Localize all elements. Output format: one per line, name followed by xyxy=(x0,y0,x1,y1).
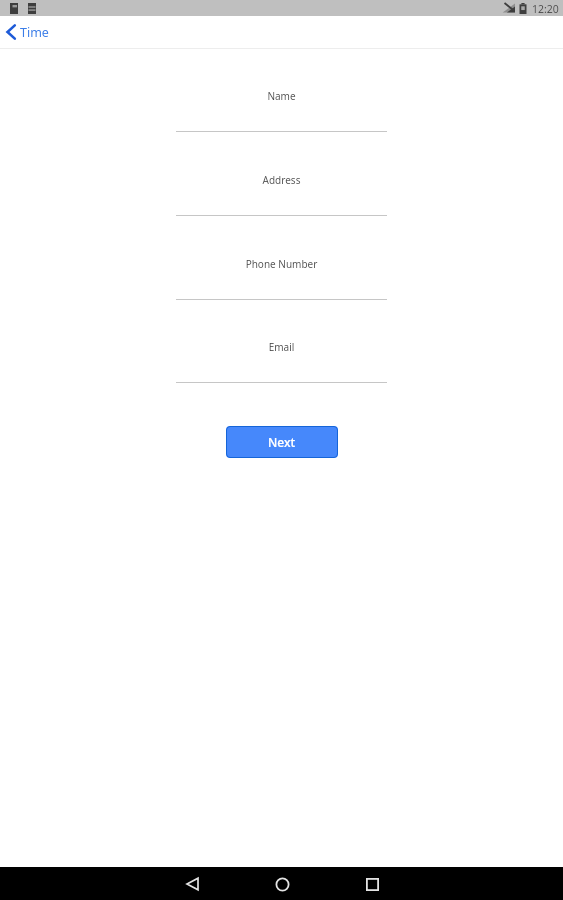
staticText: Email xyxy=(176,340,387,354)
staticText: Address xyxy=(176,173,387,187)
staticText: Time xyxy=(20,24,49,41)
staticText: Next xyxy=(268,434,296,450)
staticText: Phone Number xyxy=(176,257,387,271)
staticText: Name xyxy=(176,89,387,103)
button[interactable]: Back to Time xyxy=(0,16,57,48)
button[interactable]: Name xyxy=(176,89,387,132)
button[interactable]: Next xyxy=(226,426,338,458)
button[interactable]: Phone Number xyxy=(176,257,387,300)
button[interactable]: Address xyxy=(176,173,387,216)
staticText: 12:20 xyxy=(532,2,559,16)
button[interactable]: Recent apps xyxy=(352,874,392,894)
button[interactable]: Email xyxy=(176,340,387,383)
button[interactable]: Home xyxy=(262,874,302,894)
button[interactable]: Back xyxy=(172,874,212,894)
